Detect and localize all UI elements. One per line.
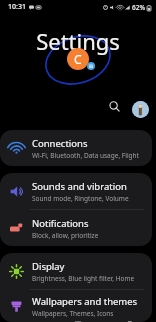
staticText: 10:31 (8, 2, 26, 12)
button[interactable]: Sounds and vibration (0, 173, 152, 209)
staticText: Wallpapers, Themes, Icons (32, 309, 114, 318)
button[interactable]: Display (0, 253, 152, 289)
staticText: Wi-Fi, Bluetooth, Data usage, Flight mod… (32, 151, 146, 160)
staticText: Settings (36, 26, 120, 56)
button[interactable]: Notifications (0, 210, 152, 246)
staticText: Sound mode, Ringtone, Volume (32, 194, 129, 203)
staticText: Wallpapers and themes (32, 295, 138, 308)
staticText: Brightness, Blue light filter, Home scre… (32, 274, 146, 283)
staticText: Display (32, 260, 65, 273)
button[interactable]: Profile (132, 101, 149, 118)
staticText: 62% (132, 3, 145, 12)
staticText: Block, allow, prioritize (32, 231, 99, 240)
button[interactable]: Connections (0, 130, 152, 166)
button[interactable]: Wallpapers and themes (0, 290, 152, 322)
button[interactable]: Account avatar (67, 48, 89, 70)
staticText: Connections (32, 137, 88, 150)
staticText: Notifications (32, 217, 89, 230)
staticText: Sounds and vibration (32, 180, 127, 193)
button[interactable]: Search (104, 96, 124, 116)
staticText: C (74, 51, 82, 67)
